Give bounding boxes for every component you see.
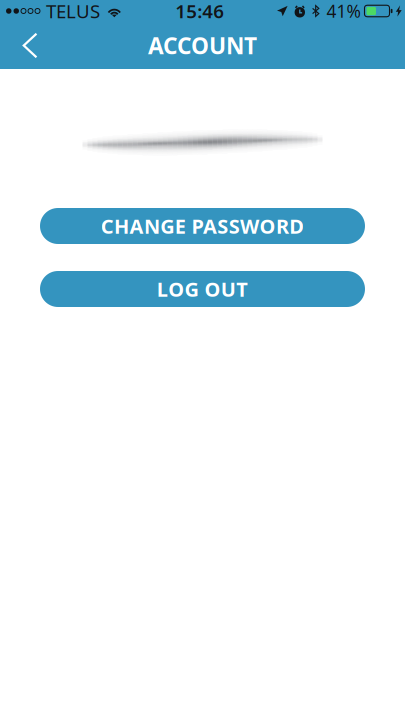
staticText: 15:46	[175, 0, 224, 23]
staticText: TELUS	[46, 0, 100, 23]
button[interactable]: CHANGE PASSWORD	[40, 208, 365, 244]
staticText: 41%	[326, 0, 360, 22]
button[interactable]: Back	[8, 23, 52, 67]
staticText: ACCOUNT	[148, 30, 257, 60]
staticText: LOG OUT	[157, 276, 248, 302]
button[interactable]: LOG OUT	[40, 271, 365, 307]
staticText: CHANGE PASSWORD	[101, 213, 304, 239]
